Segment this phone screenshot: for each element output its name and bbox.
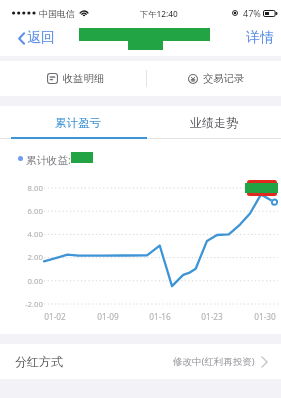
staticText: 修改中(红利再投资) — [173, 355, 255, 368]
staticText: 业绩走势 — [190, 115, 238, 130]
staticText: 分红方式 — [15, 354, 63, 369]
staticText: 6.00 — [0, 206, 43, 216]
staticText: 8.00 — [0, 183, 43, 193]
staticText: 2.00 — [0, 252, 43, 262]
staticText: 累计收益: — [26, 153, 71, 167]
staticText: 47% — [243, 7, 261, 19]
staticText: 收益明细 — [63, 72, 105, 85]
staticText: 4.00 — [0, 229, 43, 239]
staticText: 01-02 — [39, 311, 71, 322]
button[interactable]: 累计盈亏 — [9, 106, 147, 139]
button[interactable]: 返回 — [16, 24, 57, 52]
staticText: 中国电信 — [39, 8, 75, 19]
staticText: 01-23 — [196, 311, 228, 322]
button[interactable]: 交易记录 — [147, 61, 281, 96]
staticText: -2.00 — [0, 299, 43, 309]
staticText: 01-16 — [144, 311, 176, 322]
staticText: 详情 — [246, 29, 274, 47]
staticText: 0.00 — [0, 276, 43, 286]
button[interactable]: 业绩走势 — [147, 106, 281, 139]
staticText: 返回 — [27, 29, 55, 47]
button[interactable]: 详情 — [244, 24, 276, 52]
staticText: 下午12:40 — [140, 8, 178, 19]
staticText: 01-30 — [249, 311, 281, 322]
staticText: 01-09 — [92, 311, 124, 322]
staticText: 交易记录 — [203, 72, 245, 85]
button[interactable]: 收益明细 — [0, 61, 146, 96]
button[interactable]: 分红方式 — [0, 344, 281, 379]
staticText: 累计盈亏 — [55, 116, 101, 130]
